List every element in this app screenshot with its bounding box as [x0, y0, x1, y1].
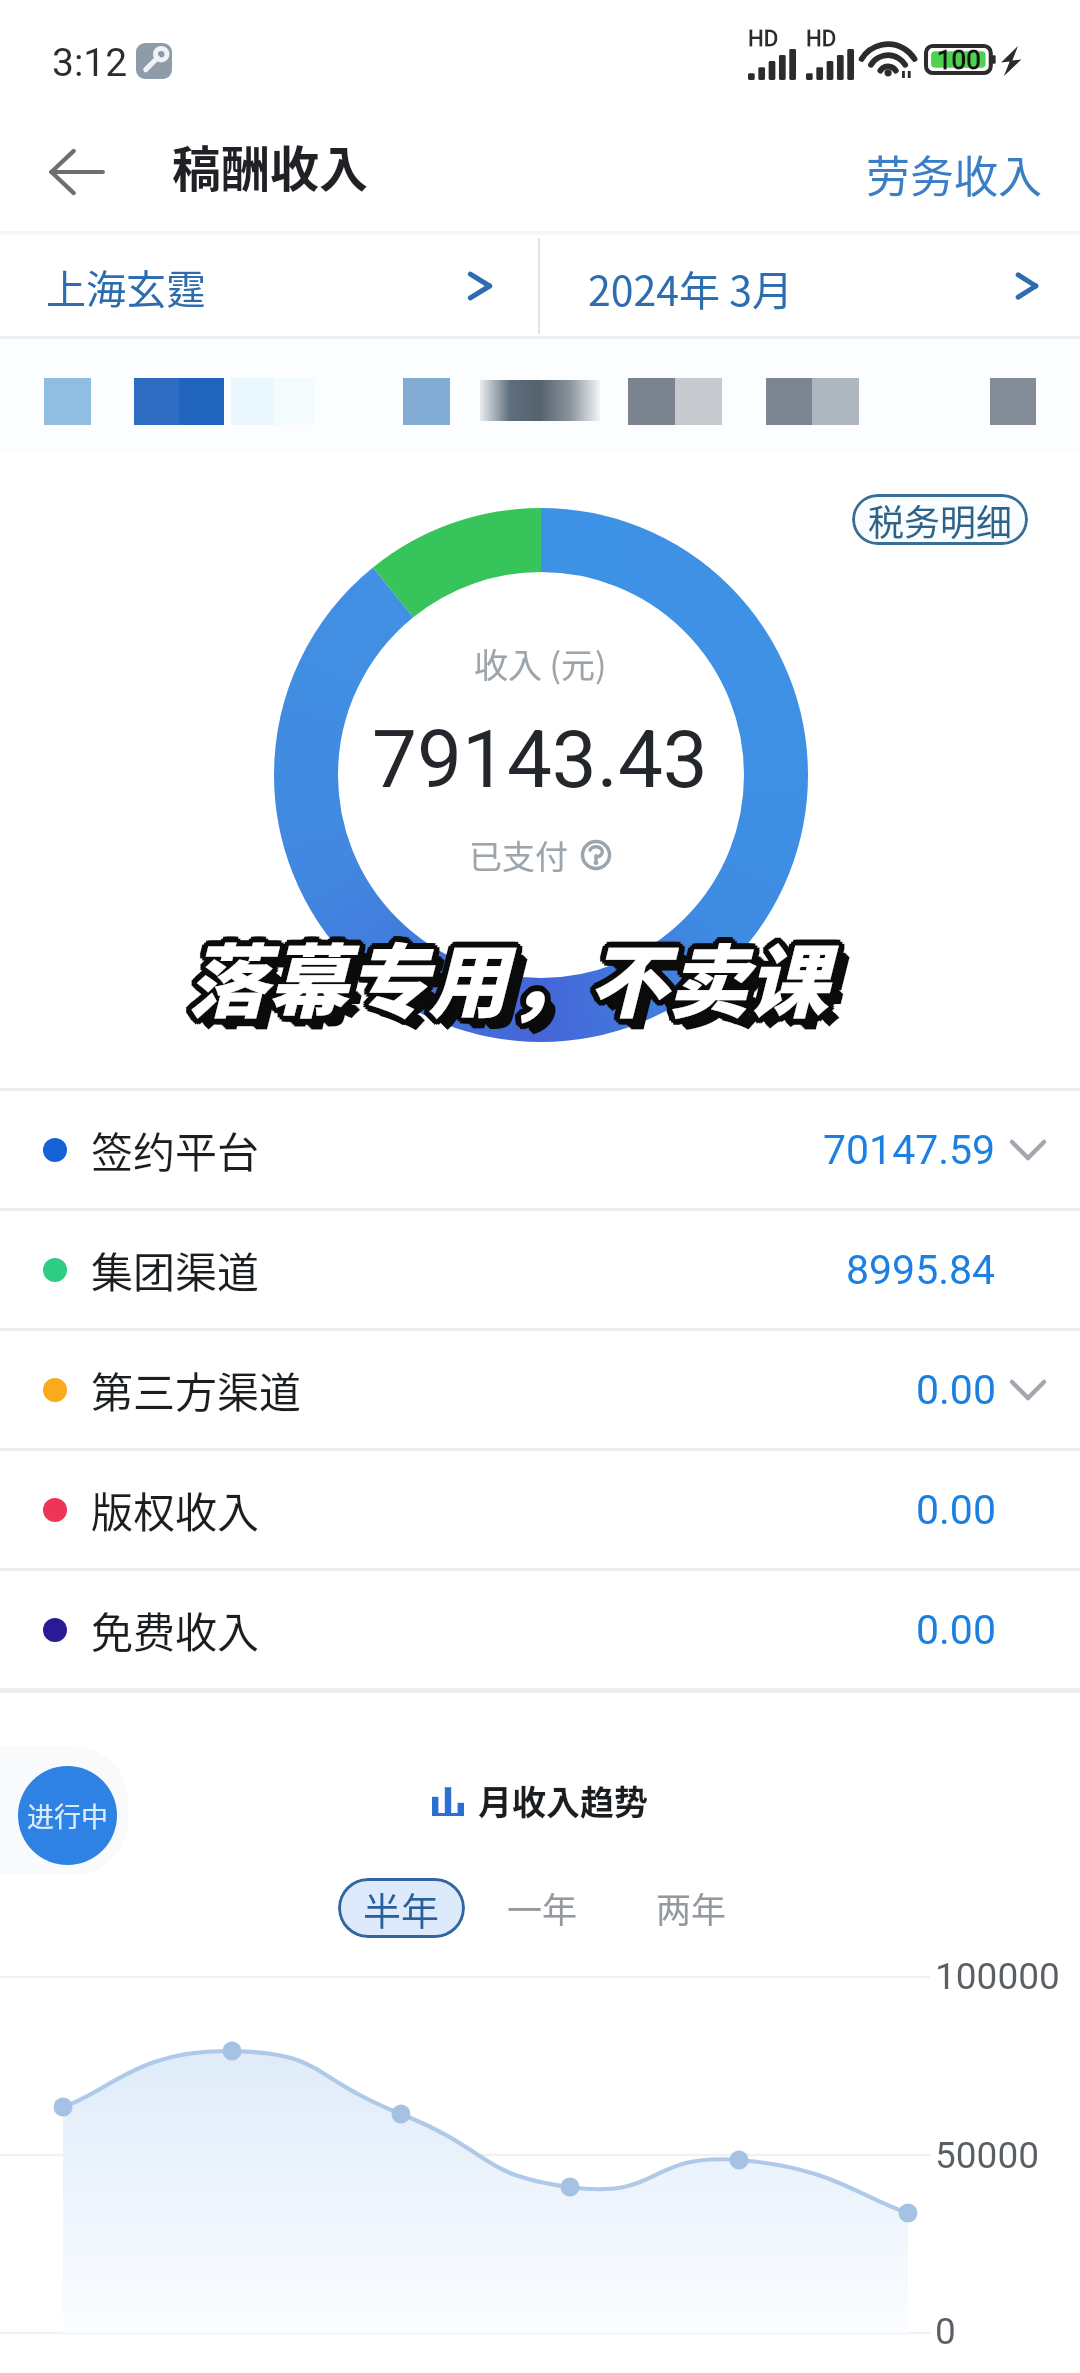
button[interactable]: 免费收入	[0, 1571, 1080, 1688]
staticText: 100	[937, 45, 981, 72]
staticText: 落幕专用，不卖课	[190, 912, 830, 1028]
staticText: 落幕专用，不卖课	[194, 916, 834, 1032]
staticText: 8995.84	[846, 1246, 996, 1294]
staticText: 半年	[363, 1881, 440, 1936]
button[interactable]: Back	[22, 118, 130, 226]
staticText: 50000	[935, 2134, 1039, 2177]
staticText: 税务明细	[868, 494, 1013, 545]
staticText: 已支付	[469, 831, 568, 879]
staticText: 2024年 3月	[588, 258, 793, 317]
staticText: 0.00	[916, 1486, 996, 1534]
staticText: 落幕专用，不卖课	[188, 924, 828, 1040]
staticText: 落幕专用，不卖课	[199, 929, 839, 1045]
staticText: HD	[806, 26, 837, 52]
staticText: 落幕专用，不卖课	[184, 914, 824, 1030]
staticText: 收入 (元)	[474, 639, 607, 688]
staticText: 落幕专用，不卖课	[194, 918, 834, 1034]
button[interactable]: 进行中	[0, 1747, 128, 1875]
staticText: 落幕专用，不卖课	[190, 924, 830, 1040]
button[interactable]: 版权收入	[0, 1451, 1080, 1568]
staticText: 一年	[507, 1882, 578, 1933]
staticText: 落幕专用，不卖课	[182, 918, 822, 1034]
staticText: 3:12	[52, 40, 128, 86]
staticText: 79143.43	[372, 713, 708, 807]
staticText: 落幕专用，不卖课	[192, 922, 832, 1038]
staticText: 签约平台	[91, 1119, 260, 1180]
button[interactable]: 第三方渠道	[0, 1331, 1080, 1448]
button[interactable]: 上海玄霆	[0, 236, 538, 336]
staticText: 集团渠道	[91, 1239, 260, 1300]
button[interactable]: 一年	[485, 1866, 600, 1949]
staticText: HD	[748, 26, 779, 52]
button[interactable]: 2024年 3月	[540, 236, 1080, 336]
staticText: 落幕专用，不卖课	[188, 912, 828, 1028]
staticText: 落幕专用，不卖课	[197, 927, 837, 1043]
button[interactable]: 两年	[634, 1866, 749, 1949]
staticText: 0.00	[916, 1366, 996, 1414]
button[interactable]: 签约平台	[0, 1091, 1080, 1208]
staticText: 落幕专用，不卖课	[198, 928, 838, 1044]
button[interactable]: 税务明细	[852, 494, 1028, 545]
staticText: 100000	[935, 1955, 1060, 1998]
staticText: 70147.59	[823, 1126, 996, 1174]
staticText: 免费收入	[91, 1599, 260, 1660]
staticText: 0	[935, 2310, 956, 2353]
button[interactable]: 劳务收入	[844, 128, 1064, 220]
staticText: 进行中	[27, 1796, 108, 1835]
button[interactable]: 集团渠道	[0, 1211, 1080, 1328]
staticText: 上海玄霆	[46, 258, 206, 316]
staticText: 落幕专用，不卖课	[184, 922, 824, 1038]
staticText: 落幕专用，不卖课	[194, 920, 834, 1036]
staticText: 月收入趋势	[478, 1776, 648, 1825]
staticText: 落幕专用，不卖课	[182, 920, 822, 1036]
button[interactable]: 半年	[338, 1878, 465, 1938]
staticText: 落幕专用，不卖课	[195, 925, 835, 1041]
staticText: 版权收入	[91, 1479, 260, 1540]
staticText: 0.00	[916, 1606, 996, 1654]
staticText: 落幕专用，不卖课	[192, 914, 832, 1030]
staticText: 两年	[656, 1882, 727, 1933]
staticText: 落幕专用，不卖课	[188, 918, 828, 1034]
staticText: 第三方渠道	[91, 1359, 302, 1420]
staticText: 落幕专用，不卖课	[186, 924, 826, 1040]
staticText: 落幕专用，不卖课	[182, 916, 822, 1032]
staticText: 稿酬收入	[172, 130, 369, 201]
staticText: 落幕专用，不卖课	[186, 912, 826, 1028]
staticText: 劳务收入	[866, 142, 1042, 206]
staticText: 落幕专用，不卖课	[196, 926, 836, 1042]
